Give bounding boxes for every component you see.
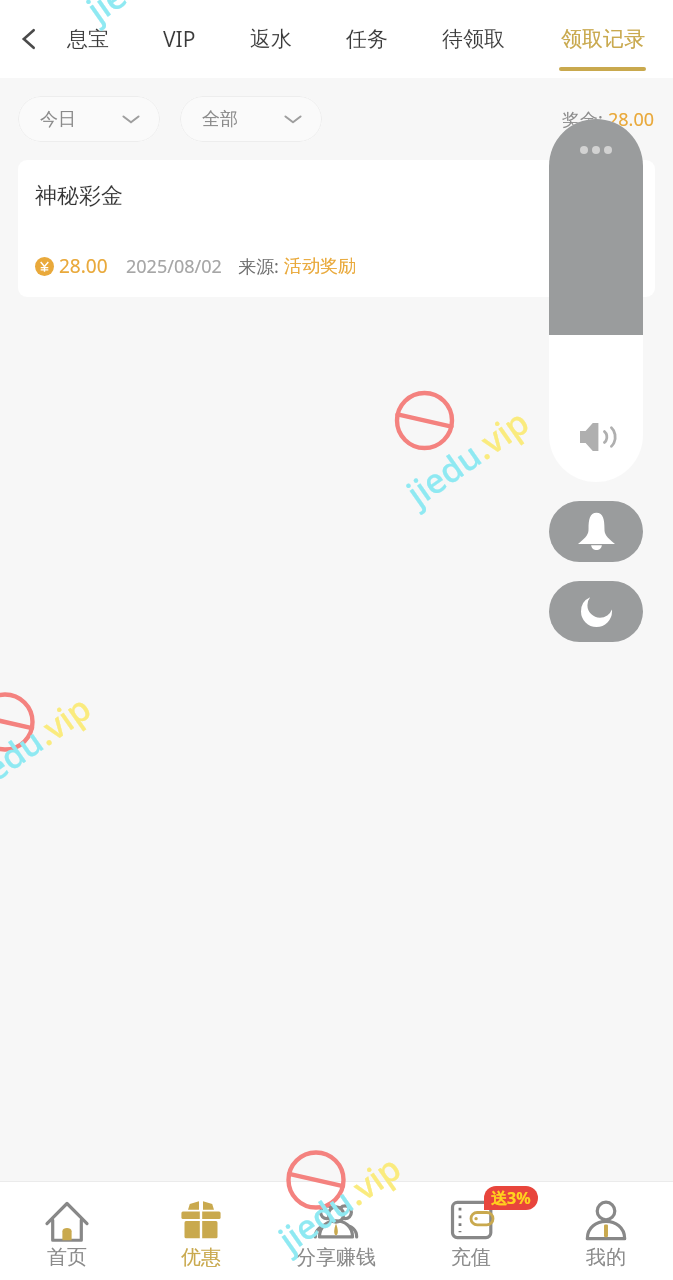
staticText: 返水 [250, 26, 292, 52]
button[interactable]: Ring [549, 501, 643, 562]
staticText: 领取记录 [561, 26, 645, 52]
button[interactable]: 领取记录 [532, 0, 673, 78]
button[interactable]: VIP [136, 0, 223, 78]
button[interactable]: 首页 [0, 1181, 134, 1280]
staticText: 今日 [40, 108, 76, 131]
button[interactable]: 返水 [223, 0, 319, 78]
button[interactable]: Volume [549, 119, 643, 482]
staticText: 活动奖励 [284, 255, 356, 278]
button[interactable]: Back [6, 16, 52, 62]
staticText: 28.00 [59, 253, 108, 279]
staticText: 送3% [491, 1187, 531, 1209]
staticText: 首页 [47, 1245, 87, 1270]
button[interactable]: 全部 [180, 96, 322, 142]
staticText: .vip [336, 1144, 410, 1215]
staticText: 28.00 [608, 107, 655, 132]
button[interactable]: 神秘彩金 [18, 160, 655, 297]
staticText: 优惠 [181, 1245, 221, 1270]
staticText: 任务 [346, 26, 388, 52]
staticText: 神秘彩金 [35, 182, 123, 210]
button[interactable]: 我的 [538, 1181, 673, 1280]
staticText: 待领取 [442, 26, 505, 52]
button[interactable]: 今日 [18, 96, 160, 142]
staticText: 分享赚钱 [296, 1245, 376, 1270]
staticText: 我的 [586, 1245, 626, 1270]
button[interactable]: 息宝 [40, 0, 136, 78]
staticText: jiedu [0, 718, 52, 802]
button[interactable]: 任务 [319, 0, 415, 78]
button[interactable]: Do not disturb [549, 581, 643, 642]
staticText: jiedu [269, 1178, 362, 1262]
staticText: VIP [163, 25, 196, 54]
staticText: .vip [26, 684, 100, 755]
staticText: 2025/08/02 [126, 254, 222, 279]
staticText: jiedu [77, 0, 170, 32]
staticText: 充值 [451, 1245, 491, 1270]
staticText: 息宝 [67, 26, 109, 52]
button[interactable]: 待领取 [415, 0, 532, 78]
staticText: 奖金: [562, 107, 608, 132]
staticText: jiedu [397, 432, 490, 516]
staticText: 全部 [202, 108, 238, 131]
staticText: 来源: [238, 254, 284, 279]
button[interactable]: 送3% [403, 1181, 538, 1280]
staticText: .vip [464, 398, 538, 469]
button[interactable]: 分享赚钱 [268, 1181, 403, 1280]
button[interactable]: 优惠 [134, 1181, 268, 1280]
